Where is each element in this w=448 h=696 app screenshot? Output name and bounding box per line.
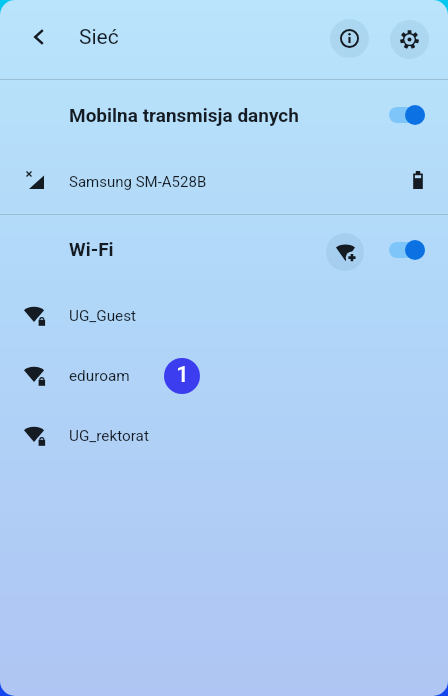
button[interactable]: UG_rektorat bbox=[0, 410, 448, 470]
button[interactable]: UG_Guest bbox=[0, 290, 448, 350]
staticText: Wi-Fi bbox=[69, 238, 114, 260]
button[interactable]: Toggle bbox=[389, 240, 425, 260]
button[interactable]: Toggle bbox=[389, 105, 425, 125]
staticText: UG_Guest bbox=[69, 307, 137, 325]
staticText: eduroam bbox=[69, 367, 130, 385]
button[interactable]: Add Wi-Fi network bbox=[326, 233, 364, 271]
staticText: 1 bbox=[176, 362, 189, 388]
button[interactable]: eduroam bbox=[0, 350, 448, 410]
staticText: Samsung SM-A528B bbox=[69, 173, 207, 191]
staticText: Sieć bbox=[79, 25, 119, 50]
button[interactable]: Information bbox=[330, 19, 369, 58]
button[interactable]: Samsung SM-A528B bbox=[0, 159, 448, 214]
staticText: UG_rektorat bbox=[69, 427, 149, 445]
button[interactable]: Mobilna transmisja danych bbox=[0, 80, 448, 159]
button[interactable]: Settings bbox=[390, 20, 429, 59]
staticText: Mobilna transmisja danych bbox=[69, 104, 299, 126]
button[interactable]: Back bbox=[17, 15, 61, 59]
